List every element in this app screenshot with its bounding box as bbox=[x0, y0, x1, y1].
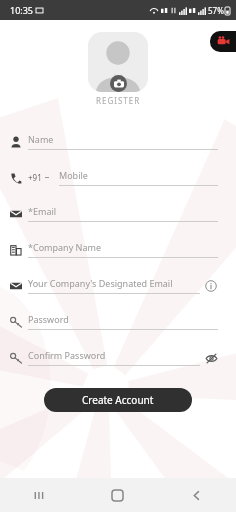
button[interactable]: +91 bbox=[0, 159, 236, 195]
button[interactable]: Confirm Password bbox=[0, 339, 236, 375]
staticText: *Email bbox=[28, 205, 57, 217]
button[interactable]: *Company Name bbox=[0, 231, 236, 267]
button[interactable]: Information bbox=[204, 279, 218, 293]
button[interactable]: Home bbox=[78, 478, 157, 512]
staticText: +91 bbox=[28, 172, 42, 183]
staticText: 10:35 bbox=[10, 4, 34, 16]
button[interactable]: Name bbox=[0, 123, 236, 159]
button[interactable]: Back bbox=[157, 478, 236, 512]
button[interactable]: Show password bbox=[204, 351, 218, 365]
button[interactable]: Your Company's Designated Email bbox=[0, 267, 236, 303]
staticText: Name bbox=[28, 133, 54, 145]
staticText: *Company Name bbox=[28, 241, 101, 253]
button[interactable]: Screen recorder bbox=[210, 31, 236, 52]
button[interactable]: Password bbox=[0, 303, 236, 339]
staticText: Password bbox=[28, 313, 69, 325]
button[interactable]: Change photo bbox=[88, 32, 148, 92]
other: Change photo bbox=[110, 75, 127, 92]
staticText: Mobile bbox=[59, 169, 88, 181]
button[interactable]: Create Account bbox=[44, 388, 192, 412]
staticText: REGISTER bbox=[96, 95, 141, 106]
staticText: 57% bbox=[208, 5, 224, 16]
staticText: Create Account bbox=[82, 393, 154, 407]
staticText: Confirm Password bbox=[28, 349, 106, 361]
staticText: Your Company's Designated Email bbox=[28, 277, 173, 289]
button[interactable]: *Email bbox=[0, 195, 236, 231]
button[interactable]: Recent apps bbox=[0, 478, 78, 512]
